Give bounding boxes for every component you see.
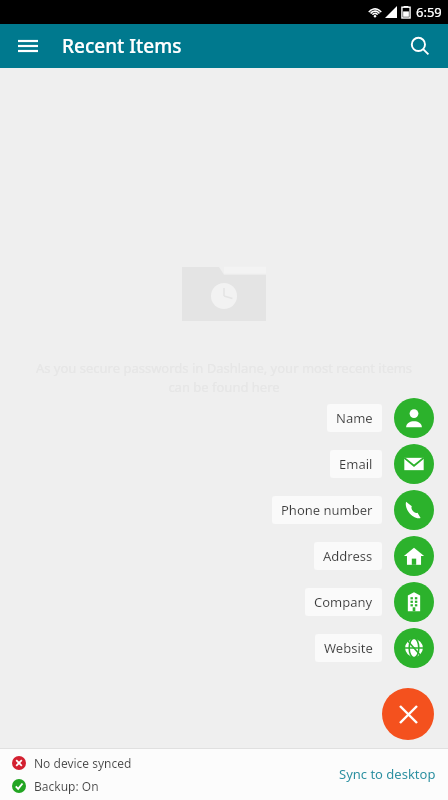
staticText: No device synced [34, 755, 132, 771]
staticText: Phone number [281, 501, 373, 519]
staticText: Address [323, 547, 373, 565]
staticText: Email [339, 455, 373, 473]
button[interactable]: Sync to desktop [327, 755, 448, 793]
staticText: 6:59 [416, 3, 442, 21]
button[interactable]: Website [315, 628, 434, 668]
staticText: Name [336, 409, 373, 427]
button[interactable]: Open navigation menu [8, 26, 48, 66]
button[interactable]: Phone number [272, 490, 434, 530]
button[interactable]: Name [327, 398, 434, 438]
staticText: Website [324, 639, 373, 657]
button[interactable]: Close menu [382, 688, 434, 740]
button[interactable]: Search [400, 26, 440, 66]
staticText: Recent Items [62, 33, 182, 59]
staticText: Sync to desktop [339, 765, 436, 783]
staticText: Backup: On [34, 778, 99, 794]
button[interactable]: Address [314, 536, 434, 576]
button[interactable]: Company [305, 582, 434, 622]
button[interactable]: Email [330, 444, 434, 484]
staticText: Company [314, 593, 373, 611]
